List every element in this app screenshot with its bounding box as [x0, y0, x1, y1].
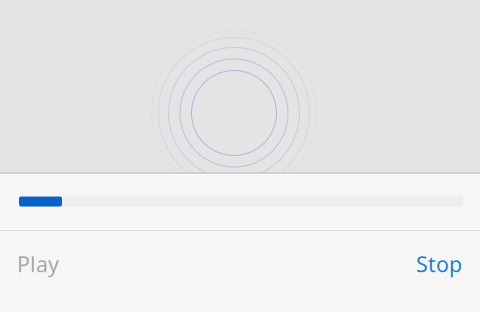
staticText: Stop: [416, 250, 462, 278]
staticText: Play: [17, 250, 59, 278]
button[interactable]: Stop: [416, 250, 462, 278]
button[interactable]: Play: [17, 250, 59, 278]
